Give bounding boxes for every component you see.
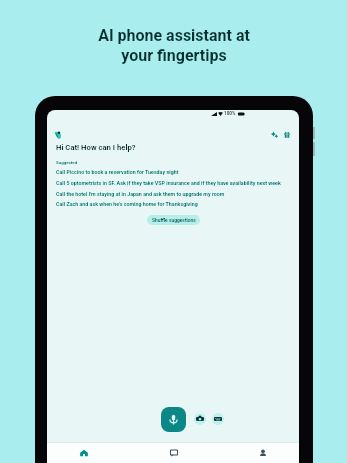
staticText: Call Zach and ask when he's coming home … bbox=[56, 201, 198, 207]
button[interactable]: Keyboard bbox=[212, 413, 224, 425]
staticText: Call the hotel I'm staying at in Japan a… bbox=[56, 191, 225, 197]
button[interactable]: Camera bbox=[194, 413, 206, 425]
staticText: Shuffle suggestions bbox=[152, 217, 196, 223]
staticText: Call Piccino to book a reservation for T… bbox=[56, 169, 179, 175]
button[interactable]: Chats bbox=[160, 443, 188, 463]
staticText: Suggested bbox=[56, 160, 78, 165]
staticText: Hi Cat! How can I help? bbox=[56, 143, 136, 152]
button[interactable]: Call Piccino to book a reservation for T… bbox=[47, 166, 299, 177]
button[interactable]: AI suggestions bbox=[269, 129, 280, 140]
staticText: 100% bbox=[224, 111, 236, 116]
button[interactable]: Shuffle suggestions bbox=[147, 215, 200, 225]
button[interactable]: Home bbox=[70, 443, 98, 463]
button[interactable]: Gifts bbox=[281, 129, 292, 140]
staticText: AI phone assistant at your fingertips bbox=[98, 26, 250, 65]
button[interactable]: Call Zach and ask when he's coming home … bbox=[47, 198, 299, 209]
button[interactable]: Microphone bbox=[161, 407, 186, 432]
button[interactable]: Profile bbox=[249, 443, 277, 463]
staticText: Call 5 optometrists in SF. Ask if they t… bbox=[56, 180, 281, 186]
button[interactable]: Call 5 optometrists in SF. Ask if they t… bbox=[47, 177, 299, 188]
button[interactable]: Call the hotel I'm staying at in Japan a… bbox=[47, 188, 299, 199]
